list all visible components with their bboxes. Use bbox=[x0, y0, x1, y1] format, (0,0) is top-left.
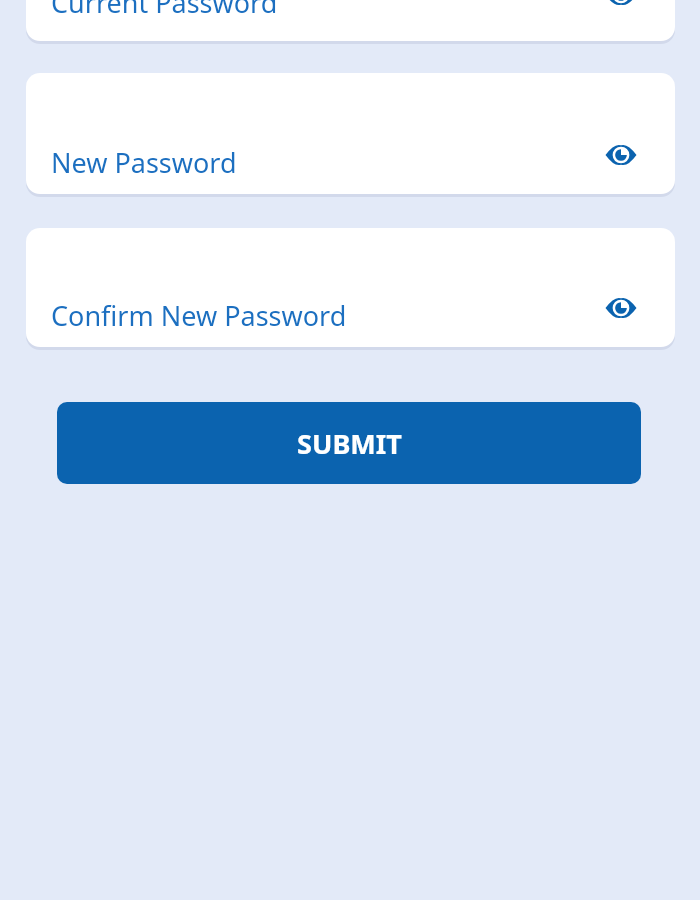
staticText: New Password bbox=[51, 144, 237, 181]
button[interactable]: Show Confirm New Password bbox=[597, 284, 645, 332]
button[interactable] bbox=[26, 0, 675, 41]
button[interactable] bbox=[26, 228, 675, 347]
button[interactable]: Show Current Password bbox=[597, 0, 645, 19]
button[interactable]: SUBMIT bbox=[57, 402, 641, 484]
staticText: Current Password bbox=[51, 0, 278, 21]
staticText: Confirm New Password bbox=[51, 297, 347, 334]
button[interactable]: Show New Password bbox=[597, 131, 645, 179]
button[interactable] bbox=[26, 73, 675, 194]
staticText: SUBMIT bbox=[297, 425, 402, 462]
